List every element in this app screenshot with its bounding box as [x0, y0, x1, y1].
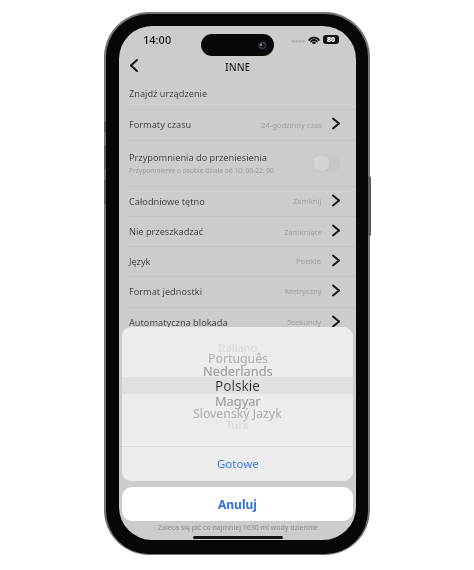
staticText: Polskie: [296, 256, 322, 266]
staticText: Znajdź urządzenie: [129, 87, 208, 100]
staticText: Formaty czasu: [129, 118, 192, 131]
button[interactable]: Gotowe: [122, 447, 353, 480]
staticText: Anuluj: [218, 496, 257, 512]
button[interactable]: Formaty czasu: [119, 109, 356, 140]
button[interactable]: Znajdź urządzenie: [119, 78, 356, 109]
staticText: Italiano: [218, 340, 258, 355]
staticText: Język: [129, 255, 151, 268]
button[interactable]: Format jednostki: [119, 276, 356, 306]
staticText: Türk: [226, 417, 249, 432]
button[interactable]: Back: [123, 54, 145, 77]
staticText: Metryczny: [285, 286, 322, 296]
staticText: Slovenský Jazyk: [193, 405, 282, 422]
staticText: Nie przeszkadzać: [129, 225, 204, 238]
staticText: INNE: [225, 60, 251, 74]
staticText: Zamknij: [293, 196, 322, 206]
staticText: Całodniowe tętno: [129, 195, 205, 208]
button[interactable]: Automatyczna blokada: [119, 307, 356, 337]
button[interactable]: Nie przeszkadzać: [119, 216, 356, 247]
staticText: Zaleca się pić co najmniej 1630 ml wody …: [158, 523, 318, 533]
staticText: 5sekundy: [287, 317, 322, 327]
staticText: Przypomnienie o osobie działa od 10: 00-…: [129, 166, 274, 175]
staticText: 24-godzinny czas: [261, 120, 322, 130]
staticText: Gotowe: [217, 456, 259, 472]
staticText: Nederlands: [203, 362, 273, 379]
staticText: 80: [327, 35, 336, 44]
button[interactable]: Język: [119, 246, 356, 276]
staticText: Przypomnienia do przeniesienia: [129, 151, 267, 164]
staticText: Zamknięte: [284, 227, 322, 237]
staticText: Automatyczna blokada: [129, 316, 228, 329]
staticText: Magyar: [215, 392, 261, 409]
staticText: Polskie: [215, 376, 260, 394]
staticText: 14:00: [143, 32, 172, 47]
staticText: Português: [208, 350, 268, 367]
staticText: Format jednostki: [129, 285, 203, 298]
button[interactable]: Przypomnienia do przeniesienia: [119, 140, 356, 186]
button[interactable]: Anuluj: [122, 487, 353, 521]
button[interactable]: Całodniowe tętno: [119, 186, 356, 216]
